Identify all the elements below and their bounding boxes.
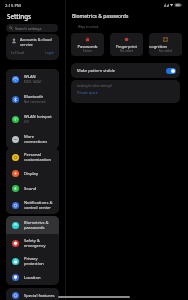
button[interactable]: Notifications & control center [6,196,59,214]
staticText: LeCloud [11,50,24,55]
staticText: WLAN [24,74,36,80]
button[interactable]: Search settings [6,24,58,32]
staticText: Sound [24,186,37,192]
staticText: Notifications & control center [24,200,53,210]
staticText: Ways to unlock [78,25,99,29]
staticText: Pattern [71,49,104,53]
staticText: Special features [24,293,55,299]
button[interactable]: Sound [6,181,59,196]
button[interactable]: WLAN [6,69,59,89]
staticText: Make pattern visible [77,68,116,73]
staticText: MIUI-1A0A7 [24,80,42,84]
staticText: Looking for other settings? [77,84,113,88]
staticText: Passwords [71,44,104,49]
staticText: Bluetooth [24,94,43,100]
staticText: Off [24,120,29,124]
staticText: Not added [110,49,143,53]
button[interactable]: Accounts & cloud service [6,34,59,60]
staticText: Biometrics & passwords [72,13,129,20]
staticText: Safety & emergency [24,238,46,248]
staticText: Fingerprint [110,44,143,49]
staticText: Display [24,171,38,177]
button[interactable]: Private space [77,90,98,94]
button[interactable]: Location [6,270,59,285]
other: Status icons [164,3,182,7]
button[interactable]: Display [6,166,59,181]
button[interactable]: Biometrics & passwords [6,216,59,234]
button[interactable]: Passwords [71,33,104,56]
staticText: 2:16 PM [5,3,21,9]
button[interactable]: Bluetooth [6,89,59,109]
button[interactable]: Privacy protection [6,252,59,270]
staticText: Search settings [15,26,42,31]
button[interactable]: Special features [6,288,59,300]
staticText: More connections [24,134,48,144]
staticText: Biometrics & passwords [24,220,49,230]
button[interactable]: Make pattern visible [71,63,180,78]
staticText: Personal customization [24,152,52,162]
button[interactable]: Fingerprint [110,33,143,56]
staticText: Login [45,50,54,55]
staticText: Not added [149,49,182,53]
button[interactable]: More connections [6,129,59,149]
staticText: Face recognition [149,44,168,49]
staticText: WLAN hotspot [24,114,52,120]
button[interactable]: Face recognition [149,33,182,56]
button[interactable]: WLAN hotspot [6,109,59,129]
staticText: Accounts & cloud service [20,37,52,47]
staticText: Settings [7,12,32,20]
button[interactable]: Safety & emergency [6,234,59,252]
staticText: Privacy protection [24,256,44,266]
staticText: Location [24,275,41,281]
staticText: Not connected [24,100,46,104]
button[interactable]: Personal customization [6,148,59,166]
